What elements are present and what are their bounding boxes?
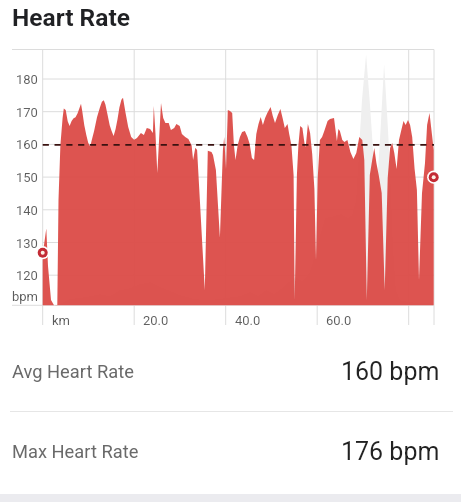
staticText: 170 — [16, 105, 38, 120]
button[interactable]: Avg Heart Rate — [0, 332, 461, 411]
staticText: 180 — [16, 72, 38, 87]
staticText: 20.0 — [143, 313, 169, 328]
staticText: 160 — [16, 137, 38, 152]
staticText: 140 — [16, 203, 38, 218]
staticText: 60.0 — [326, 313, 352, 328]
staticText: 176 bpm — [341, 437, 440, 466]
staticText: Heart Rate — [12, 3, 130, 32]
staticText: km — [52, 313, 70, 328]
staticText: 130 — [16, 236, 38, 251]
staticText: Avg Heart Rate — [12, 361, 134, 382]
staticText: bpm — [12, 289, 38, 304]
button[interactable]: Max Heart Rate — [0, 412, 461, 491]
staticText: 150 — [16, 170, 38, 185]
staticText: 40.0 — [235, 313, 261, 328]
staticText: 120 — [16, 268, 38, 283]
staticText: 160 bpm — [341, 357, 440, 386]
staticText: Max Heart Rate — [12, 441, 139, 462]
